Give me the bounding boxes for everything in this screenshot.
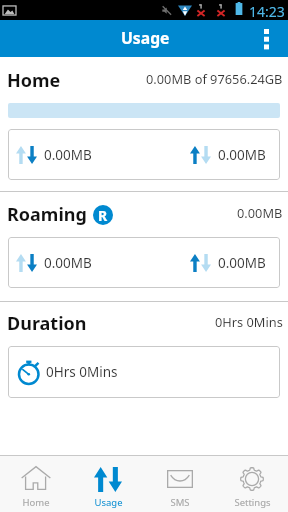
staticText: R [98,206,108,225]
button[interactable]: 0.00MB [8,237,280,288]
button[interactable]: Settings [216,456,288,512]
staticText: Duration [7,311,87,336]
button[interactable]: Usage [72,456,144,512]
staticText: 0.00MB [44,254,92,272]
staticText: Settings [234,496,271,509]
staticText: Usage [121,27,170,48]
button[interactable]: More options [254,20,288,57]
staticText: 0.00MB of 97656.24GB [146,70,283,87]
staticText: 0.00MB [218,146,266,164]
staticText: SMS [170,496,190,509]
staticText: Home [22,496,50,509]
staticText: 0Hrs 0Mins [46,363,118,381]
staticText: Home [7,68,61,93]
staticText: 0.00MB [218,254,266,272]
staticText: 0.00MB [44,146,92,164]
button[interactable]: 0Hrs 0Mins [8,346,280,398]
button[interactable]: Home [0,456,72,512]
staticText: Roaming [7,202,87,227]
button[interactable]: SMS [144,456,216,512]
staticText: 14:23 [249,2,285,21]
staticText: 0Hrs 0Mins [215,313,283,330]
staticText: 0.00MB [237,204,283,221]
staticText: Usage [94,496,123,509]
button[interactable]: 0.00MB [8,129,280,180]
